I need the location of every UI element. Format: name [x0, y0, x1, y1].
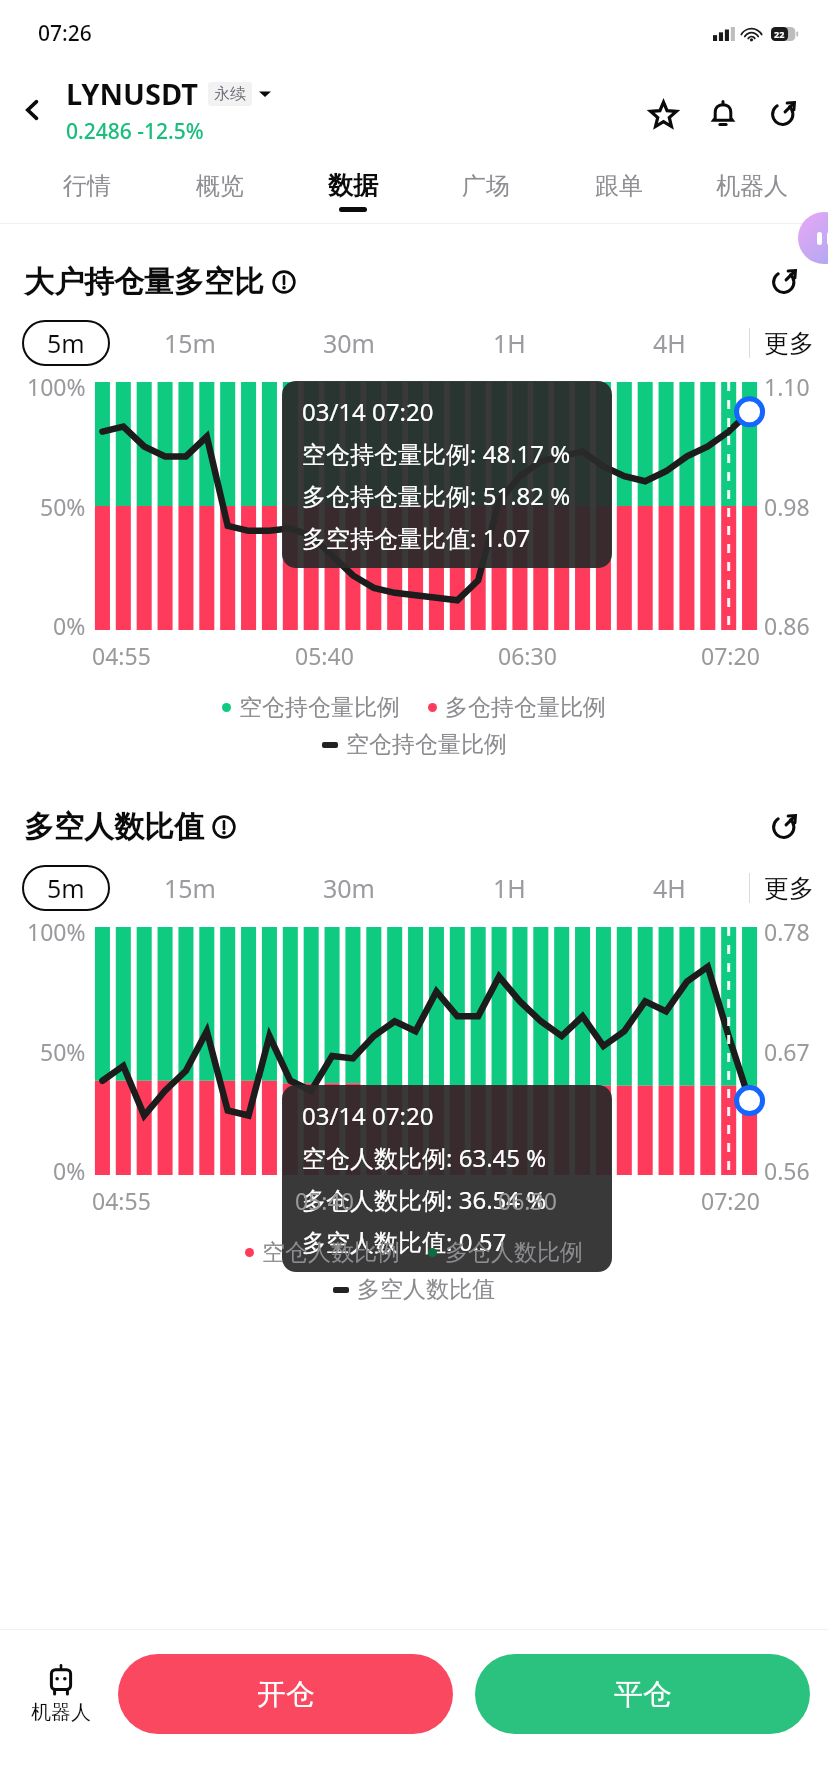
button[interactable]: 1H [429, 865, 589, 911]
staticText: 多仓持仓量比例 [445, 693, 606, 722]
staticText: 行情 [63, 171, 111, 201]
staticText: 03/14 07:20 [302, 395, 434, 428]
staticText: 开仓 [257, 1676, 315, 1713]
staticText: 07:20 [701, 1185, 760, 1216]
staticText: 空仓持仓量比例 [239, 693, 400, 722]
staticText: 30m [323, 871, 375, 905]
staticText: 多空人数比值 [357, 1275, 495, 1304]
staticText: 0.56 [764, 1155, 810, 1186]
staticText: 更多 [764, 328, 814, 359]
button[interactable]: 广场 [419, 158, 552, 224]
staticText: 1H [493, 326, 526, 360]
button[interactable]: 平仓 [475, 1654, 810, 1734]
button[interactable]: 15m [110, 865, 269, 911]
staticText: 1H [493, 871, 526, 905]
staticText: 0.2486 -12.5% [66, 117, 204, 146]
staticText: 空仓持仓量比例: 48.17 % [302, 437, 571, 470]
staticText: 数据 [328, 170, 378, 201]
staticText: 06:30 [498, 640, 557, 671]
staticText: 机器人 [716, 171, 788, 201]
staticText: 07:26 [38, 19, 92, 48]
staticText: 0% [53, 610, 86, 641]
button[interactable]: 更多 [750, 865, 828, 911]
button[interactable]: Alerts [696, 87, 750, 141]
staticText: 0.67 [764, 1036, 810, 1067]
button[interactable]: 5m [22, 320, 110, 366]
staticText: 多仓人数比例: 36.54 % [302, 1183, 547, 1216]
staticText: 更多 [764, 873, 814, 904]
button[interactable]: Share [756, 87, 810, 141]
staticText: 永续 [214, 84, 246, 104]
staticText: 概览 [196, 171, 244, 201]
button[interactable]: Back [10, 87, 56, 133]
staticText: 平仓 [614, 1676, 672, 1713]
button[interactable]: 4H [589, 865, 749, 911]
staticText: 广场 [462, 171, 510, 201]
staticText: 30m [323, 326, 375, 360]
button[interactable]: 更多 [750, 320, 828, 366]
staticText: 06:30 [498, 1185, 557, 1216]
staticText: 5m [47, 871, 85, 905]
staticText: 多仓人数比例 [445, 1238, 583, 1267]
staticText: 4H [653, 326, 686, 360]
staticText: 5m [47, 326, 85, 360]
button[interactable]: 4H [589, 320, 749, 366]
staticText: 05:40 [295, 1185, 354, 1216]
button[interactable]: Favorite [636, 87, 690, 141]
staticText: 15m [164, 871, 216, 905]
staticText: 空仓人数比例: 63.45 % [302, 1141, 547, 1174]
staticText: 50% [40, 1036, 86, 1067]
staticText: 07:20 [701, 640, 760, 671]
staticText: 空仓持仓量比例 [346, 730, 507, 759]
staticText: 100% [27, 916, 86, 947]
staticText: 05:40 [295, 640, 354, 671]
button[interactable]: Assistant [798, 212, 828, 264]
staticText: 0.86 [764, 610, 810, 641]
staticText: 0.98 [764, 491, 810, 522]
button[interactable]: 30m [269, 865, 429, 911]
staticText: LYNUSDT [66, 74, 199, 113]
staticText: 100% [27, 371, 86, 402]
button[interactable]: Expand chart [764, 262, 804, 302]
staticText: 机器人 [31, 1700, 91, 1725]
button[interactable]: Expand chart [764, 807, 804, 847]
staticText: 03/14 07:20 [302, 1099, 434, 1132]
button[interactable]: 开仓 [118, 1654, 453, 1734]
button[interactable]: 行情 [20, 158, 153, 224]
button[interactable]: 机器人 [685, 158, 818, 224]
button[interactable]: 概览 [153, 158, 286, 224]
staticText: 22 [774, 28, 785, 40]
staticText: 多空持仓量比值: 1.07 [302, 521, 531, 554]
button[interactable]: 30m [269, 320, 429, 366]
button[interactable]: 数据 [286, 158, 419, 224]
button[interactable]: 5m [22, 865, 110, 911]
button[interactable]: 跟单 [552, 158, 685, 224]
staticText: 04:55 [92, 1185, 151, 1216]
staticText: 04:55 [92, 640, 151, 671]
button[interactable]: 1H [429, 320, 589, 366]
staticText: 多空人数比值 [24, 808, 204, 846]
staticText: 15m [164, 326, 216, 360]
staticText: 0.78 [764, 916, 810, 947]
staticText: 跟单 [595, 171, 643, 201]
staticText: 空仓人数比例 [262, 1238, 400, 1267]
button[interactable]: 机器人 [18, 1630, 104, 1758]
staticText: 多空人数比值: 0.57 [302, 1225, 507, 1258]
staticText: 4H [653, 871, 686, 905]
staticText: 50% [40, 491, 86, 522]
staticText: 0% [53, 1155, 86, 1186]
staticText: 大户持仓量多空比 [24, 263, 264, 301]
staticText: 1.10 [764, 371, 810, 402]
staticText: 多仓持仓量比例: 51.82 % [302, 479, 571, 512]
button[interactable]: 15m [110, 320, 269, 366]
